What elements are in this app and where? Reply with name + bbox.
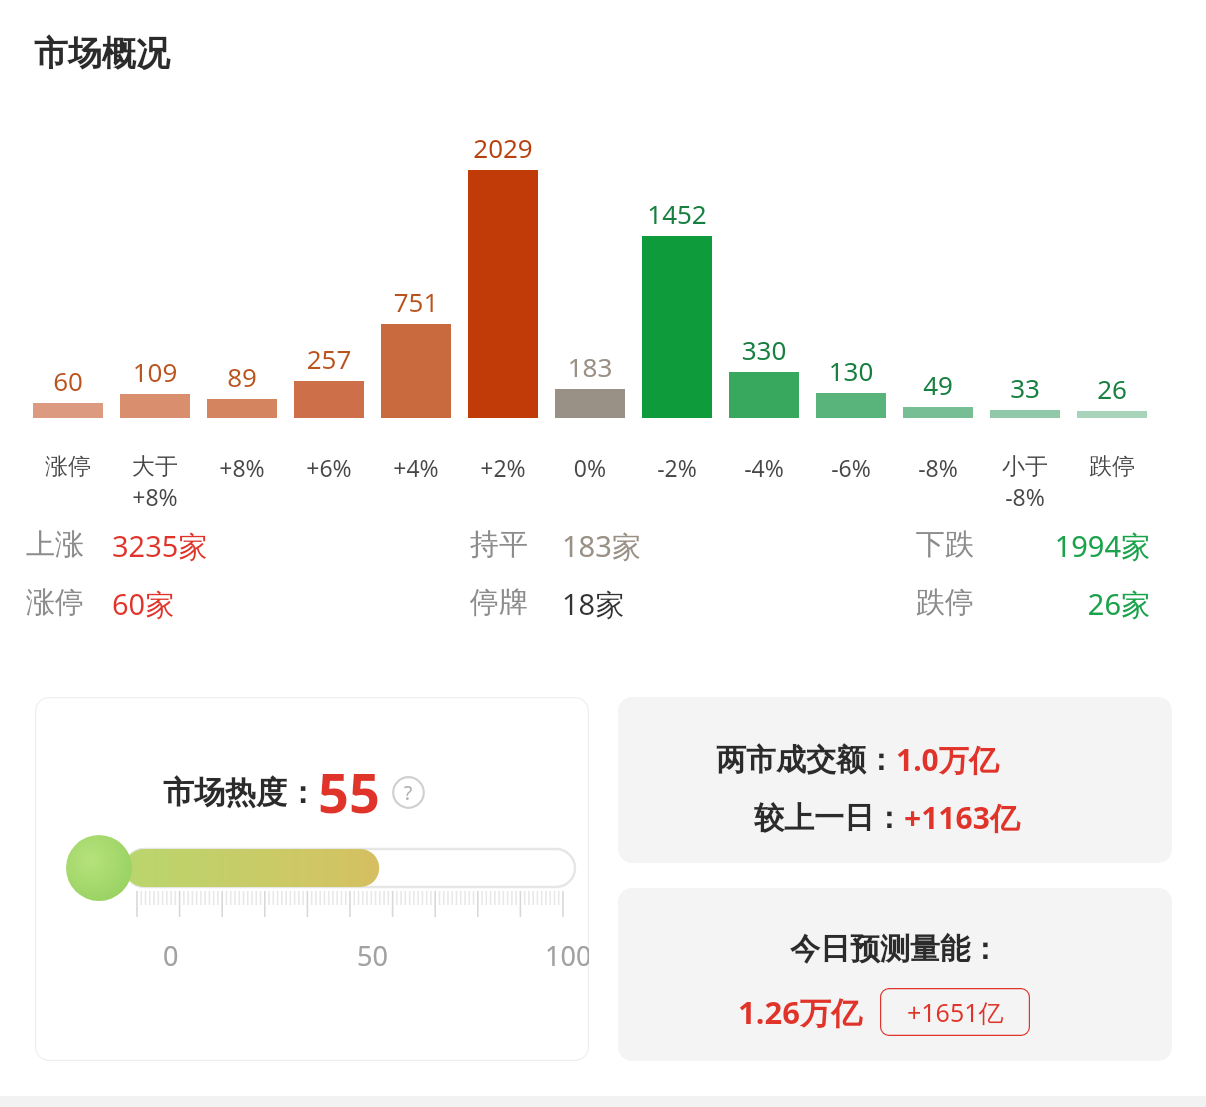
staticText: 257 [294, 341, 364, 376]
staticText: 市场热度： [163, 773, 318, 812]
staticText: 停牌 [470, 584, 528, 621]
staticText: 涨停 [33, 452, 103, 481]
staticText: 130 [816, 353, 886, 388]
staticText: 751 [381, 284, 451, 319]
staticText: 49 [903, 367, 973, 402]
staticText: 0 [163, 937, 179, 974]
staticText: 183 [555, 349, 625, 384]
staticText: 上涨 [26, 526, 84, 563]
staticText: +8% [207, 452, 277, 483]
staticText: 1994家 [990, 526, 1150, 566]
staticText: 183家 [562, 526, 641, 566]
staticText: 330 [729, 332, 799, 367]
staticText: 109 [120, 354, 190, 389]
staticText: 33 [990, 370, 1060, 405]
staticText: +8% [120, 481, 190, 512]
button[interactable]: 市场热度： [35, 697, 589, 1061]
staticText: 0% [555, 452, 625, 483]
staticText: 1.0万亿 [896, 739, 999, 780]
button[interactable]: 市场热度说明 [392, 776, 425, 809]
staticText: 大于 [120, 452, 190, 481]
button[interactable]: 今日预测量能： [618, 888, 1172, 1061]
staticText: +4% [381, 452, 451, 483]
staticText: 跌停 [1077, 452, 1147, 481]
staticText: 小于 [990, 452, 1060, 481]
staticText: 持平 [470, 526, 528, 563]
staticText: 100 [545, 937, 589, 974]
staticText: ? [404, 780, 413, 806]
staticText: 3235家 [112, 526, 208, 566]
staticText: +1163亿 [904, 797, 1020, 838]
staticText: 26家 [990, 584, 1150, 624]
staticText: +6% [294, 452, 364, 483]
staticText: 市场概况 [34, 32, 170, 75]
staticText: 26 [1077, 371, 1147, 406]
staticText: 今日预测量能： [618, 930, 1172, 968]
staticText: 涨停 [26, 584, 84, 621]
staticText: 60 [33, 363, 103, 398]
staticText: 60家 [112, 584, 175, 624]
staticText: 55 [318, 755, 380, 829]
staticText: 两市成交额： [716, 741, 896, 779]
staticText: -8% [903, 452, 973, 483]
staticText: 18家 [562, 584, 625, 624]
staticText: 89 [207, 359, 277, 394]
staticText: 50 [357, 937, 388, 974]
button[interactable]: +1651亿 [880, 988, 1030, 1036]
staticText: 2029 [468, 130, 538, 165]
staticText: -4% [729, 452, 799, 483]
staticText: 1.26万亿 [738, 991, 862, 1033]
staticText: +1651亿 [907, 995, 1004, 1029]
staticText: +2% [468, 452, 538, 483]
staticText: 跌停 [916, 584, 974, 621]
staticText: -6% [816, 452, 886, 483]
staticText: 下跌 [916, 526, 974, 563]
button[interactable]: 两市成交额： [618, 697, 1172, 863]
staticText: -2% [642, 452, 712, 483]
staticText: 1452 [642, 196, 712, 231]
staticText: 较上一日： [754, 799, 904, 837]
staticText: -8% [990, 481, 1060, 512]
